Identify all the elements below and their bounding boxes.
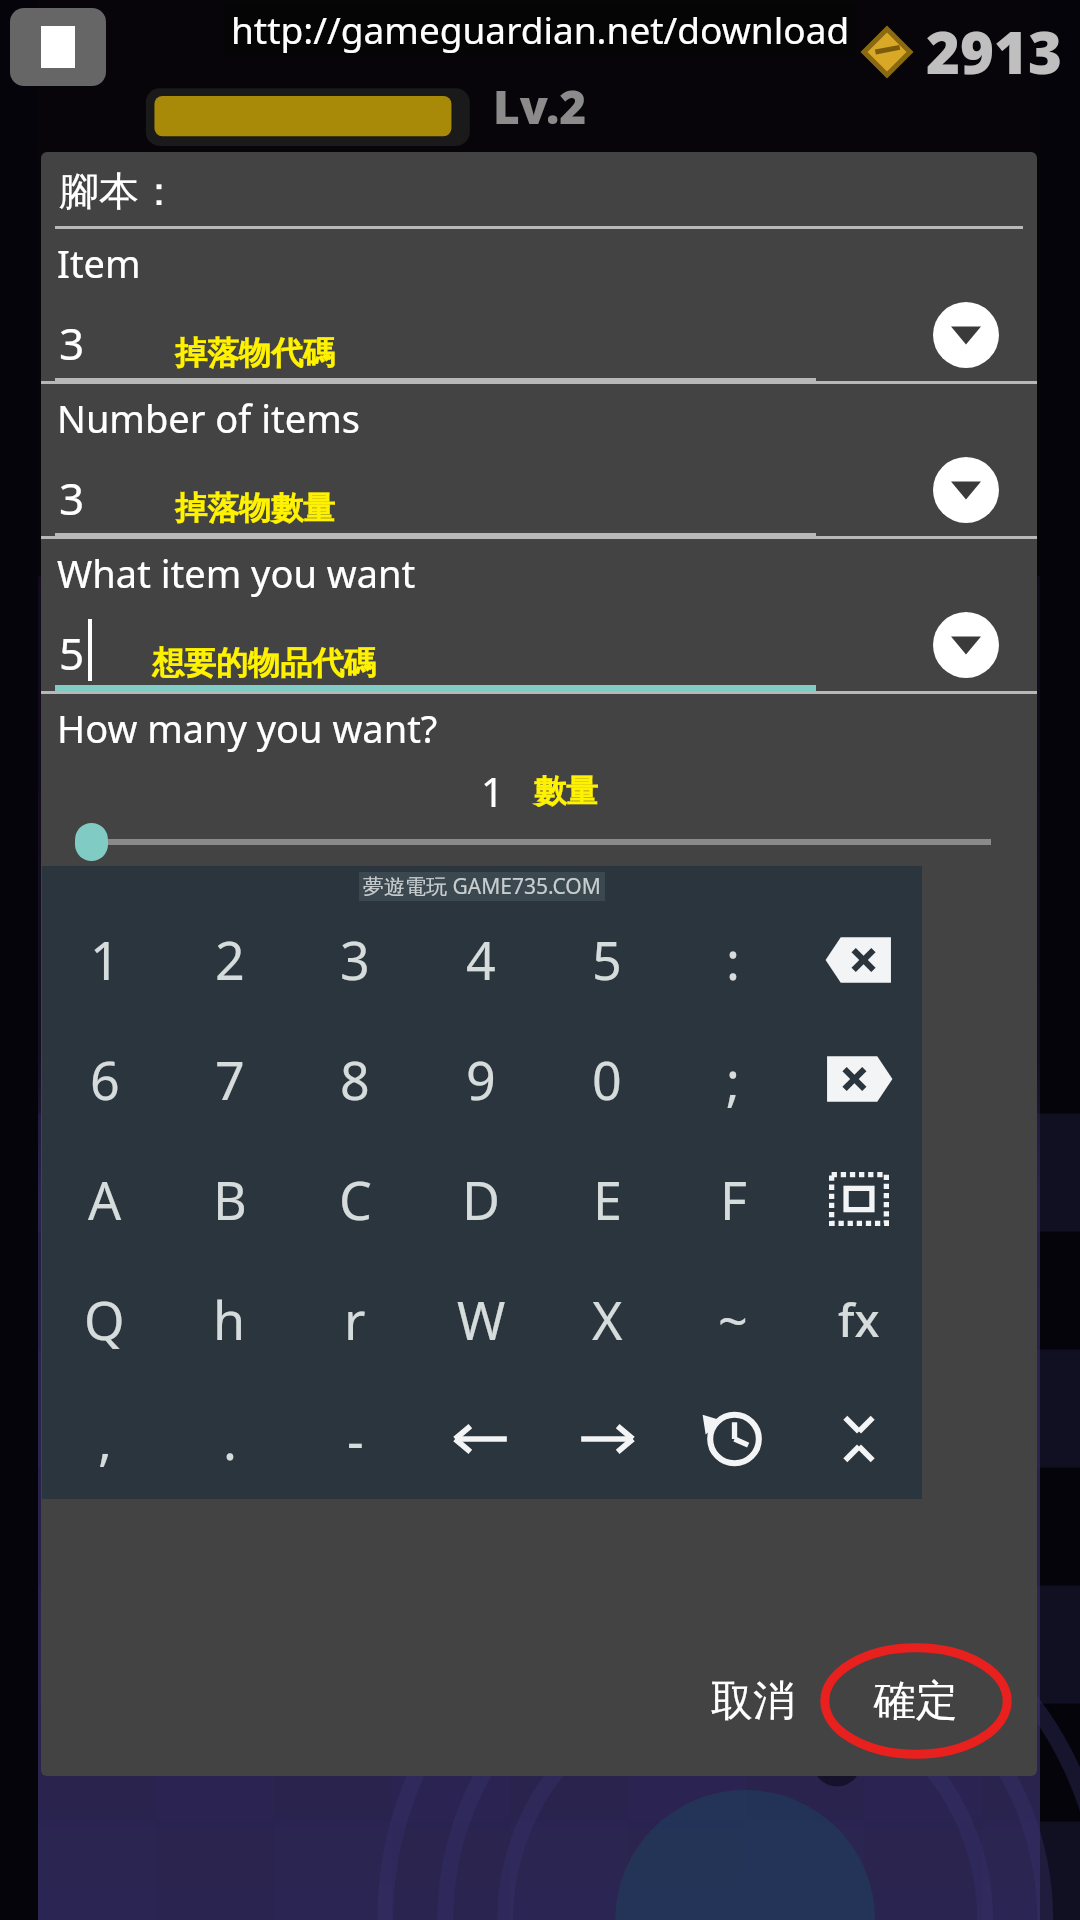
button[interactable]: : [670,900,796,1019]
staticText: r [344,1284,366,1355]
staticText: 0 [592,1044,622,1115]
button[interactable]: History [670,1379,796,1499]
staticText: : [726,924,740,995]
button[interactable]: 2 [167,900,292,1019]
button[interactable]: 6 [42,1019,167,1139]
button[interactable]: D [418,1139,544,1259]
button[interactable]: W [418,1259,544,1379]
staticText: 3 [59,468,85,528]
staticText: 掉落物代碼 [175,333,335,373]
staticText: W [457,1284,506,1355]
button[interactable]: 3 [292,900,418,1019]
staticText: A [88,1164,122,1235]
button[interactable]: Functions [796,1259,922,1379]
button[interactable]: , [42,1379,167,1499]
button[interactable]: 7 [167,1019,292,1139]
button[interactable]: Number of items [41,384,1037,536]
staticText: ~ [718,1284,748,1355]
staticText: 確定 [874,1675,958,1728]
staticText: 2913 [926,12,1062,91]
button[interactable]: r [292,1259,418,1379]
staticText: 3 [340,924,370,995]
staticText: Lv.2 [493,75,587,138]
button[interactable]: 4 [418,900,544,1019]
button[interactable]: 9 [418,1019,544,1139]
button[interactable]: ; [670,1019,796,1139]
button[interactable]: Q [42,1259,167,1379]
staticText: 數量 [534,771,598,811]
button[interactable]: Clear [796,1019,922,1139]
staticText: Q [84,1284,125,1355]
button[interactable]: 確定 [821,1639,1011,1763]
staticText: 7 [215,1044,245,1115]
staticText: 4 [466,924,496,995]
button[interactable]: Move right [544,1379,670,1499]
staticText: D [462,1164,500,1235]
staticText: 9 [466,1044,496,1115]
button[interactable]: 取消 [685,1659,821,1744]
staticText: - [347,1404,364,1475]
staticText: 夢遊電玩 GAME735.COM [363,872,601,901]
button[interactable]: C [292,1139,418,1259]
button[interactable]: A [42,1139,167,1259]
staticText: E [593,1164,622,1235]
button[interactable]: 1 [42,900,167,1019]
staticText: 腳本： [59,166,179,216]
button[interactable]: Open dropdown [933,457,999,523]
button[interactable]: X [544,1259,670,1379]
button[interactable]: Select all [796,1139,922,1259]
button[interactable]: Open dropdown [933,302,999,368]
staticText: 8 [340,1044,370,1115]
button[interactable]: Open dropdown [933,612,999,678]
staticText: 5 [59,623,85,683]
button[interactable]: F [670,1139,796,1259]
button[interactable]: 5 [544,900,670,1019]
staticText: http://gameguardian.net/download [231,4,850,54]
staticText: 5 [592,924,622,995]
staticText: fx [838,1288,880,1351]
button[interactable]: E [544,1139,670,1259]
button[interactable]: 8 [292,1019,418,1139]
staticText: Item [57,237,141,289]
button[interactable]: - [292,1379,418,1499]
staticText: F [720,1164,747,1235]
staticText: Number of items [57,392,360,444]
staticText: C [339,1164,372,1235]
button[interactable]: ~ [670,1259,796,1379]
staticText: 想要的物品代碼 [152,643,376,683]
staticText: 1 [481,764,504,818]
button[interactable]: Collapse [796,1379,922,1499]
button[interactable]: Move left [418,1379,544,1499]
button[interactable]: What item you want [41,539,1037,691]
button[interactable]: Item [41,229,1037,381]
staticText: 6 [90,1044,120,1115]
button[interactable]: h [167,1259,292,1379]
staticText: 3 [59,313,85,373]
staticText: . [223,1404,237,1475]
staticText: 取消 [711,1675,795,1728]
button[interactable]: B [167,1139,292,1259]
staticText: , [98,1404,112,1475]
staticText: 1 [90,924,120,995]
staticText: What item you want [57,547,416,599]
staticText: How many you want? [57,702,438,754]
staticText: 掉落物數量 [175,488,335,528]
staticText: 2 [215,924,245,995]
button[interactable]: 0 [544,1019,670,1139]
staticText: h [213,1284,246,1355]
staticText: ; [726,1044,740,1115]
button[interactable]: Stop [10,8,106,86]
staticText: B [213,1164,247,1235]
button[interactable]: . [167,1379,292,1499]
button[interactable] [41,818,1037,866]
staticText: X [592,1284,623,1355]
button[interactable]: Backspace [796,900,922,1019]
